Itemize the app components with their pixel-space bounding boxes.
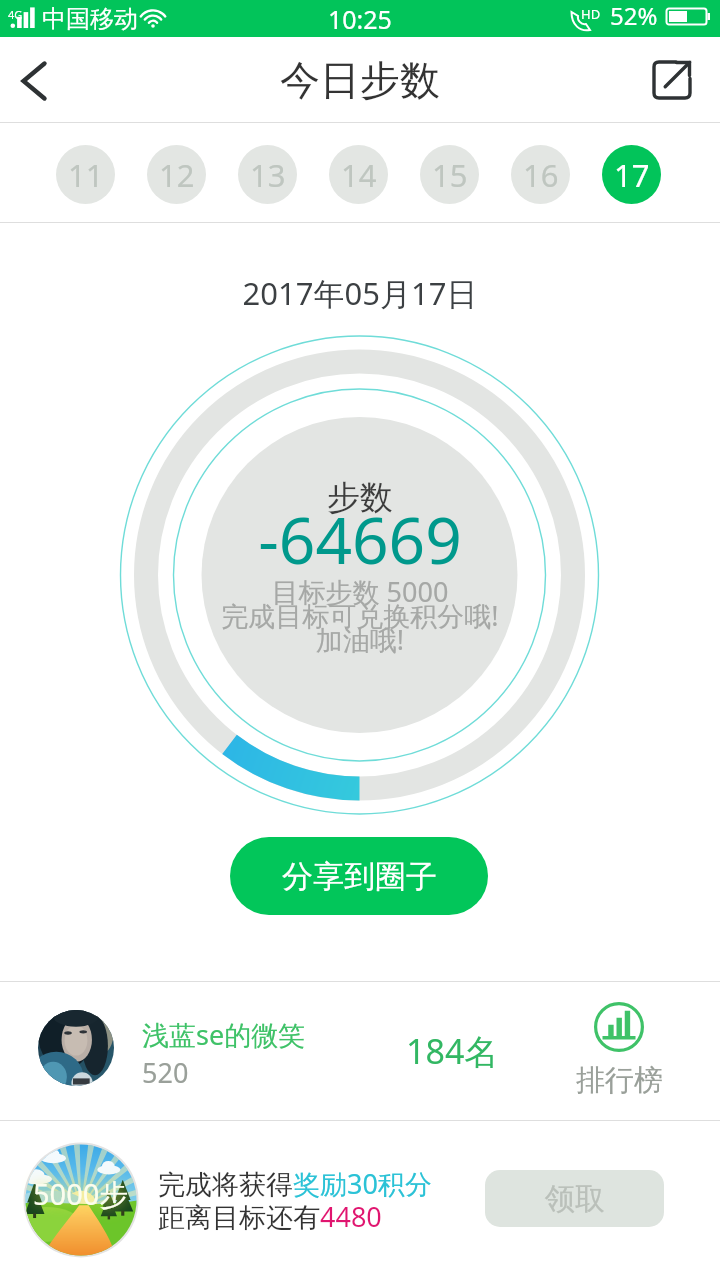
staticText: 中国移动 [42, 4, 138, 34]
staticText: 15 [432, 154, 468, 196]
button[interactable]: 15 [420, 145, 479, 204]
button[interactable]: 14 [329, 145, 388, 204]
staticText: 13 [250, 154, 286, 196]
staticText: 520 [142, 1054, 189, 1091]
staticText: -64669 [0, 496, 720, 583]
button[interactable]: 分享到圈子 [230, 837, 488, 915]
staticText: 17 [614, 154, 650, 196]
staticText: 5000步 [33, 1174, 129, 1214]
staticText: 步数 [0, 477, 720, 519]
button[interactable]: 16 [511, 145, 570, 204]
button[interactable]: Back [0, 39, 76, 121]
staticText: 16 [523, 154, 559, 196]
staticText: 12 [159, 154, 195, 196]
staticText: 2017年05月17日 [0, 272, 720, 314]
staticText: 排行榜 [576, 1062, 663, 1099]
staticText: 分享到圈子 [282, 857, 437, 896]
staticText: 完成将获得奖励30积分 距离目标还有4480 [158, 1165, 432, 1235]
button[interactable]: 13 [238, 145, 297, 204]
staticText: 目标步数 5000 完成目标可兑换积分哦! 加油哦! [0, 573, 720, 658]
staticText: 今日步数 [280, 55, 440, 105]
button[interactable]: 17 [602, 145, 661, 204]
staticText: 184名 [406, 1028, 499, 1074]
staticText: 4G [8, 7, 23, 22]
staticText: 14 [341, 154, 377, 196]
button[interactable]: 浅蓝se的微笑 [136, 982, 376, 1120]
button[interactable]: 12 [147, 145, 206, 204]
button[interactable]: 11 [56, 145, 115, 204]
button[interactable]: 排行榜 [560, 982, 680, 1120]
staticText: 浅蓝se的微笑 [142, 1016, 306, 1053]
button[interactable]: Share [640, 39, 720, 121]
staticText: 领取 [545, 1180, 605, 1218]
staticText: 52% [610, 0, 658, 32]
button[interactable]: 领取 [485, 1170, 664, 1227]
staticText: 10:25 [328, 2, 392, 36]
staticText: HD [581, 5, 601, 23]
staticText: 11 [68, 154, 104, 196]
